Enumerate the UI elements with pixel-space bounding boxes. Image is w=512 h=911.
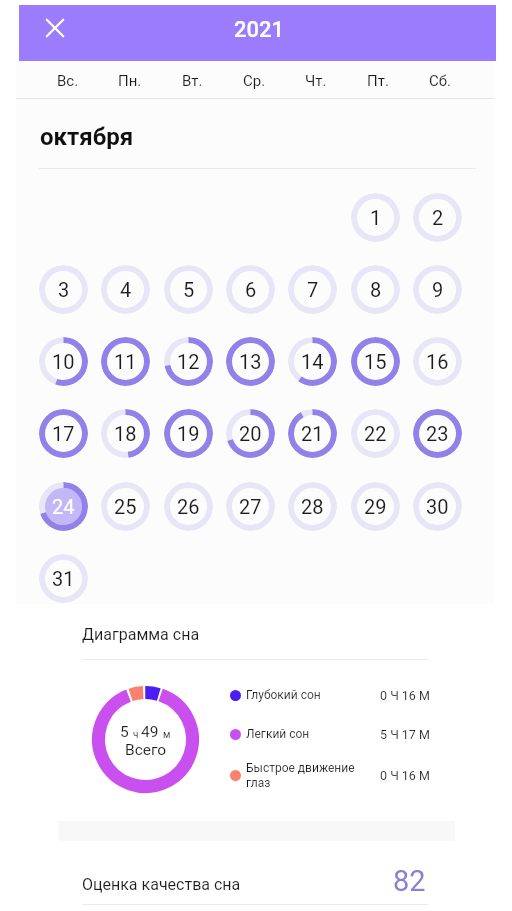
staticText: 4 bbox=[120, 278, 132, 301]
staticText: 8 bbox=[370, 278, 382, 301]
button[interactable]: 14 bbox=[288, 337, 337, 386]
staticText: Ср. bbox=[243, 72, 266, 90]
button[interactable]: 20 bbox=[226, 409, 275, 458]
staticText: 5 bbox=[183, 278, 195, 301]
staticText: 14 bbox=[301, 350, 324, 373]
staticText: 18 bbox=[114, 422, 137, 445]
staticText: Оценка качества сна bbox=[82, 875, 241, 894]
button[interactable]: 13 bbox=[226, 337, 275, 386]
button[interactable]: 18 bbox=[101, 409, 150, 458]
staticText: 6 bbox=[245, 278, 257, 301]
button[interactable]: 26 bbox=[164, 482, 213, 531]
button[interactable]: 19 bbox=[164, 409, 213, 458]
staticText: 24 bbox=[52, 495, 75, 518]
staticText: Всего bbox=[125, 741, 167, 759]
staticText: Вт. bbox=[182, 72, 203, 90]
staticText: 12 bbox=[177, 350, 200, 373]
button[interactable]: 6 bbox=[226, 265, 275, 314]
button[interactable]: 24 bbox=[39, 482, 88, 531]
staticText: 15 bbox=[364, 350, 387, 373]
staticText: 9 bbox=[432, 278, 444, 301]
button[interactable]: 4 bbox=[101, 265, 150, 314]
button[interactable]: 10 bbox=[39, 337, 88, 386]
button[interactable]: 2 bbox=[413, 193, 462, 242]
staticText: Глубокий сон bbox=[246, 688, 321, 702]
button[interactable]: Быстрое движение глаз bbox=[230, 755, 430, 795]
button[interactable]: 27 bbox=[226, 482, 275, 531]
staticText: 7 bbox=[307, 278, 319, 301]
staticText: Чт. bbox=[305, 72, 327, 90]
staticText: 3 bbox=[58, 278, 70, 301]
staticText: 28 bbox=[301, 495, 324, 518]
staticText: 5 bbox=[120, 723, 133, 741]
staticText: 19 bbox=[177, 422, 200, 445]
staticText: 23 bbox=[426, 422, 449, 445]
staticText: 5 Ч 17 М bbox=[380, 727, 430, 742]
staticText: 16 bbox=[426, 350, 449, 373]
button[interactable]: 12 bbox=[164, 337, 213, 386]
staticText: Быстрое движение глаз bbox=[246, 761, 355, 790]
staticText: 29 bbox=[364, 495, 387, 518]
button[interactable]: Глубокий сон bbox=[230, 675, 430, 715]
button[interactable]: 1 bbox=[351, 193, 400, 242]
button[interactable]: 17 bbox=[39, 409, 88, 458]
staticText: 0 Ч 16 М bbox=[380, 688, 430, 703]
staticText: 21 bbox=[301, 422, 324, 445]
button[interactable]: 25 bbox=[101, 482, 150, 531]
button[interactable]: Close bbox=[36, 9, 74, 47]
staticText: октября bbox=[40, 123, 134, 149]
staticText: 0 Ч 16 М bbox=[380, 768, 430, 783]
staticText: Вс. bbox=[57, 72, 79, 90]
button[interactable]: 8 bbox=[351, 265, 400, 314]
staticText: 49 bbox=[141, 723, 163, 741]
staticText: 1 bbox=[370, 206, 382, 229]
staticText: Диаграмма сна bbox=[82, 625, 200, 644]
staticText: Легкий сон bbox=[246, 727, 310, 741]
button[interactable]: 22 bbox=[351, 409, 400, 458]
staticText: 27 bbox=[239, 495, 262, 518]
button[interactable]: 31 bbox=[39, 554, 88, 603]
staticText: Пн. bbox=[118, 72, 142, 90]
staticText: 25 bbox=[114, 495, 137, 518]
button[interactable]: 21 bbox=[288, 409, 337, 458]
button[interactable]: 3 bbox=[39, 265, 88, 314]
staticText: 20 bbox=[239, 422, 262, 445]
staticText: 30 bbox=[426, 495, 449, 518]
button[interactable]: 7 bbox=[288, 265, 337, 314]
staticText: ч bbox=[133, 729, 141, 741]
button[interactable]: 29 bbox=[351, 482, 400, 531]
staticText: 13 bbox=[239, 350, 262, 373]
button[interactable]: 5 bbox=[164, 265, 213, 314]
staticText: 17 bbox=[52, 422, 75, 445]
staticText: 22 bbox=[364, 422, 387, 445]
button[interactable]: 9 bbox=[413, 265, 462, 314]
staticText: 11 bbox=[114, 350, 137, 373]
button[interactable]: 28 bbox=[288, 482, 337, 531]
button[interactable]: 23 bbox=[413, 409, 462, 458]
staticText: Пт. bbox=[367, 72, 389, 90]
staticText: 26 bbox=[177, 495, 200, 518]
staticText: Сб. bbox=[429, 72, 452, 90]
staticText: м bbox=[163, 729, 171, 741]
staticText: 2021 bbox=[234, 17, 285, 43]
staticText: 82 bbox=[393, 864, 426, 898]
staticText: 31 bbox=[52, 567, 75, 590]
button[interactable]: 11 bbox=[101, 337, 150, 386]
button[interactable]: Легкий сон bbox=[230, 714, 430, 754]
button[interactable]: 30 bbox=[413, 482, 462, 531]
button[interactable]: 15 bbox=[351, 337, 400, 386]
button[interactable]: 16 bbox=[413, 337, 462, 386]
staticText: 2 bbox=[432, 206, 444, 229]
staticText: 10 bbox=[52, 350, 75, 373]
